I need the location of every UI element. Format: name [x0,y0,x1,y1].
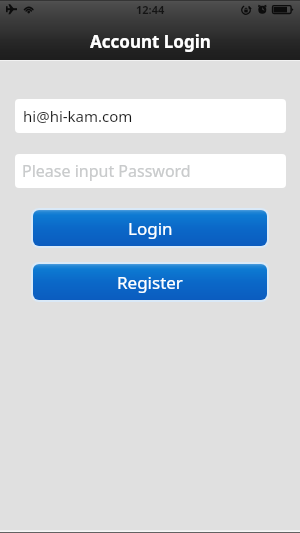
button[interactable]: Login [31,208,269,248]
button[interactable]: hi@hi-kam.com [15,99,286,133]
staticText: 12:44 [136,2,165,17]
staticText: Please input Password [22,160,191,182]
staticText: hi@hi-kam.com [23,106,133,126]
button[interactable]: Please input Password [15,154,286,188]
staticText: Account Login [90,30,211,53]
staticText: Login [128,217,173,240]
staticText: Register [117,271,183,294]
button[interactable]: Register [31,262,269,302]
